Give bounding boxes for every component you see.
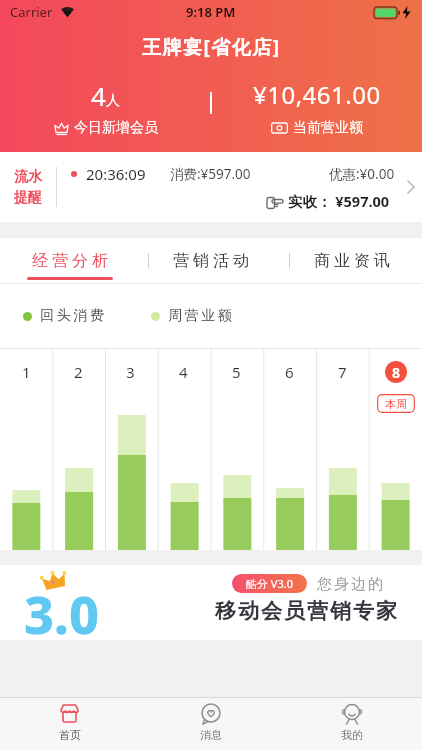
staticText: 首页 bbox=[59, 728, 81, 742]
staticText: 实收： ¥597.00 bbox=[288, 191, 390, 211]
staticText: 3 bbox=[126, 362, 135, 382]
staticText: 本周 bbox=[385, 397, 407, 411]
staticText: 3.0 bbox=[24, 578, 99, 649]
staticText: 5 bbox=[232, 362, 241, 382]
staticText: 优惠:¥0.00 bbox=[329, 165, 395, 183]
staticText: 营销活动 bbox=[171, 251, 251, 271]
staticText: 周营业额 bbox=[167, 307, 233, 325]
button[interactable]: 3.0 bbox=[0, 565, 422, 640]
button[interactable]: 我的 bbox=[281, 698, 422, 750]
staticText: 流水 bbox=[14, 168, 42, 186]
button[interactable]: 流水 bbox=[0, 152, 422, 222]
staticText: 人 bbox=[106, 92, 120, 110]
staticText: 20:36:09 bbox=[86, 164, 146, 184]
staticText: 消息 bbox=[200, 728, 222, 742]
staticText: 6 bbox=[285, 362, 294, 382]
staticText: Carrier bbox=[10, 3, 53, 21]
button[interactable]: 首页 bbox=[0, 698, 140, 750]
staticText: 我的 bbox=[341, 728, 363, 742]
button[interactable]: 商业资讯 bbox=[281, 238, 422, 283]
staticText: 当前营业额 bbox=[293, 119, 363, 137]
staticText: 王牌宴[省化店] bbox=[142, 34, 281, 60]
button[interactable]: 消息 bbox=[140, 698, 281, 750]
staticText: 移动会员营销专家 bbox=[214, 598, 398, 624]
button[interactable]: 营销活动 bbox=[140, 238, 281, 283]
staticText: ¥10,461.00 bbox=[253, 78, 381, 111]
staticText: 商业资讯 bbox=[312, 251, 392, 271]
staticText: 酷分 V3.0 bbox=[246, 576, 293, 591]
staticText: 经营分析 bbox=[30, 251, 110, 271]
staticText: 回头消费 bbox=[39, 307, 105, 325]
staticText: 消费:¥597.00 bbox=[170, 165, 251, 183]
staticText: 1 bbox=[22, 362, 31, 382]
staticText: 提醒 bbox=[14, 189, 42, 207]
staticText: 9:18 PM bbox=[186, 3, 236, 21]
staticText: 8 bbox=[392, 363, 401, 382]
button[interactable]: 经营分析 bbox=[0, 238, 140, 283]
staticText: 2 bbox=[74, 362, 83, 382]
staticText: 7 bbox=[338, 362, 347, 382]
staticText: 您身边的 bbox=[316, 575, 384, 594]
staticText: 4 bbox=[91, 78, 106, 113]
staticText: 4 bbox=[179, 362, 188, 382]
staticText: 今日新增会员 bbox=[74, 119, 158, 137]
